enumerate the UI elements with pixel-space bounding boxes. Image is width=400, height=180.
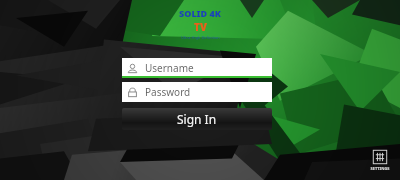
staticText: Username bbox=[145, 61, 194, 75]
staticText: SETTINGS bbox=[370, 166, 390, 171]
staticText: Password bbox=[145, 85, 191, 99]
button[interactable]: Password bbox=[122, 82, 272, 102]
staticText: SOLID 4K bbox=[179, 7, 221, 19]
button[interactable]: Settings bbox=[368, 147, 392, 173]
button[interactable]: Username bbox=[122, 58, 272, 78]
staticText: Sign In bbox=[177, 111, 217, 127]
staticText: TV bbox=[194, 20, 207, 34]
button[interactable]: Sign In bbox=[122, 108, 272, 130]
staticText: Ultra High Definition bbox=[181, 35, 220, 40]
